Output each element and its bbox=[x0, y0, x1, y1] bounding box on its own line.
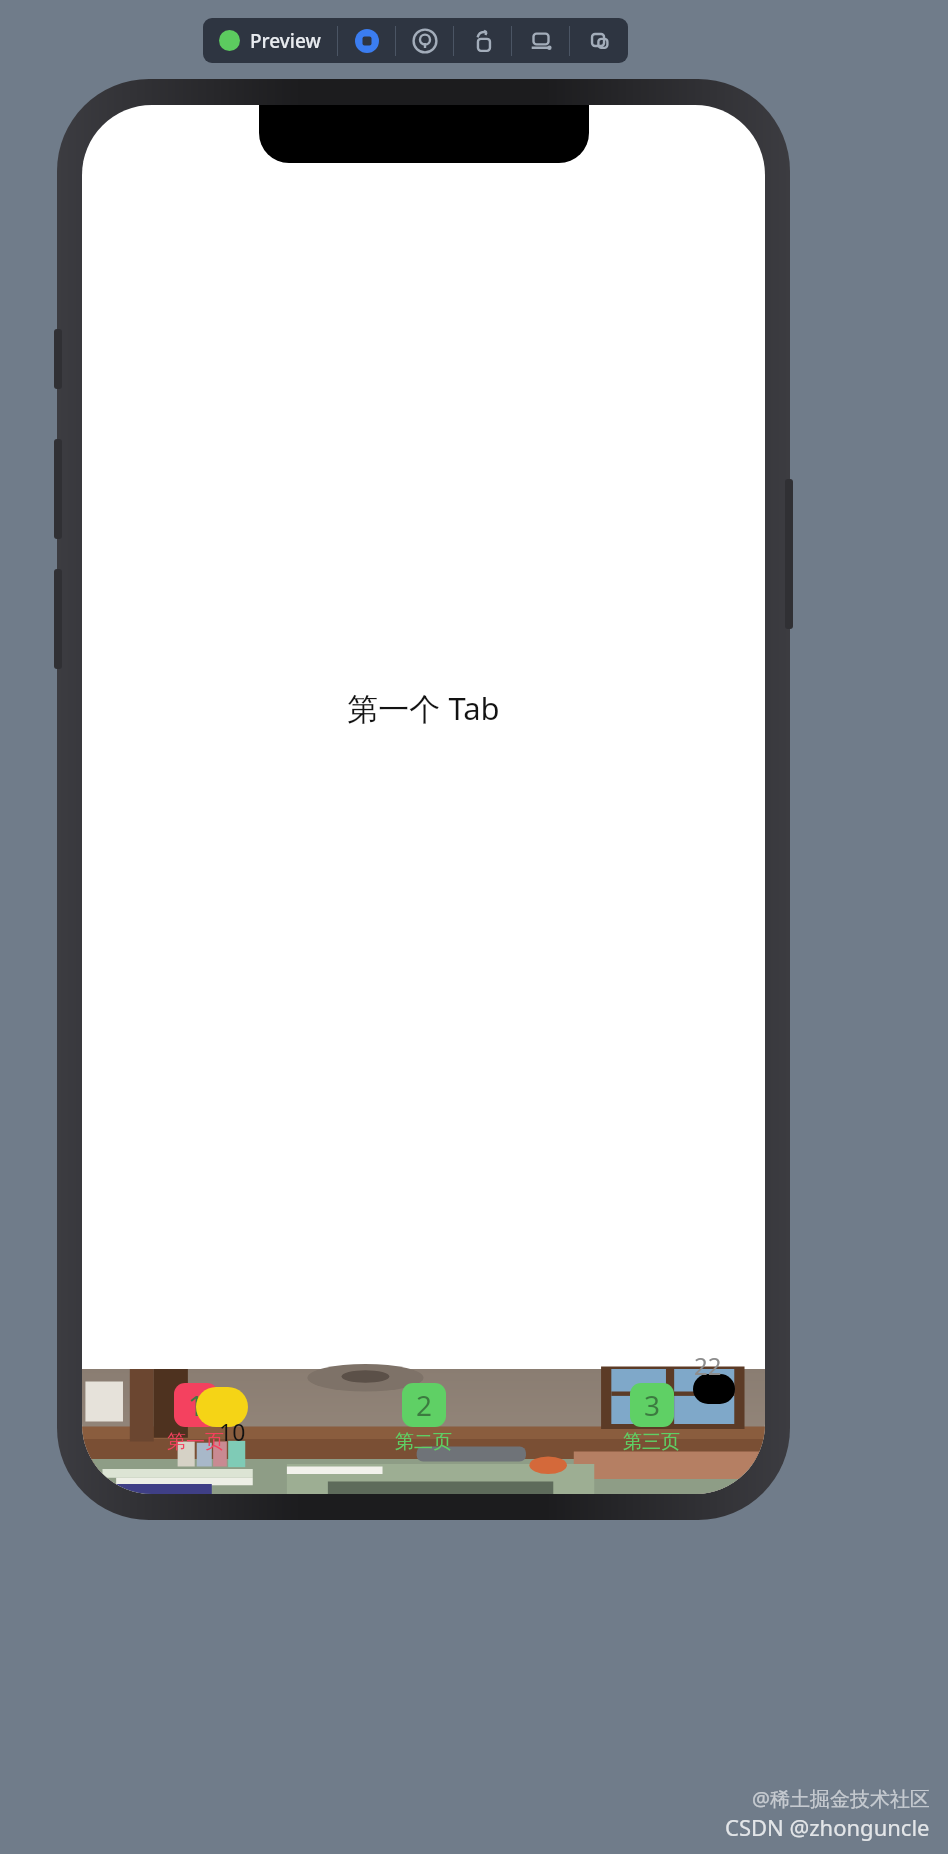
staticText: 10 bbox=[219, 1416, 246, 1447]
button[interactable]: Stop preview bbox=[338, 18, 395, 63]
staticText: 2 bbox=[416, 1386, 433, 1424]
staticText: 1 bbox=[188, 1386, 205, 1424]
staticText: @稀土掘金技术社区 bbox=[752, 1785, 930, 1812]
button[interactable]: 1 bbox=[82, 1369, 309, 1494]
staticText: Preview bbox=[250, 28, 321, 54]
staticText: 第二页 bbox=[395, 1430, 452, 1454]
staticText: 第三页 bbox=[623, 1430, 680, 1454]
button[interactable]: Copy bbox=[570, 18, 627, 63]
button[interactable]: 2 bbox=[309, 1369, 537, 1494]
button[interactable]: Inspect bbox=[396, 18, 453, 63]
button[interactable]: Rerun bbox=[454, 18, 511, 63]
staticText: 第一个 Tab bbox=[347, 687, 500, 729]
staticText: 第一页 bbox=[167, 1430, 224, 1454]
staticText: CSDN @zhonguncle bbox=[725, 1812, 930, 1842]
button[interactable]: 3 bbox=[537, 1369, 765, 1494]
button[interactable]: Run on device bbox=[512, 18, 569, 63]
button[interactable]: Preview bbox=[203, 18, 337, 63]
staticText: 22 bbox=[694, 1349, 722, 1382]
staticText: 3 bbox=[644, 1386, 661, 1424]
